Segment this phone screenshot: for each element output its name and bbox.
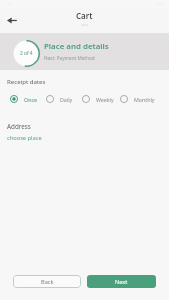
button[interactable]: choose place: [7, 134, 42, 142]
button[interactable]: Next: [87, 275, 156, 288]
staticText: choose place: [7, 134, 42, 142]
staticText: Address: [7, 122, 31, 131]
staticText: Receipt dates: [7, 77, 46, 85]
staticText: 2 of 4: [20, 50, 33, 57]
staticText: Back: [41, 278, 54, 286]
button[interactable]: Daily: [43, 92, 79, 106]
staticText: step: [81, 22, 89, 27]
staticText: Monthly: [134, 96, 155, 103]
staticText: Daily: [60, 96, 73, 103]
button[interactable]: Monthly: [117, 92, 155, 106]
staticText: Cart: [76, 10, 93, 21]
staticText: Weekly: [96, 96, 114, 103]
button[interactable]: Weekly: [79, 92, 117, 106]
button[interactable]: Back: [3, 11, 21, 29]
staticText: Once: [24, 96, 37, 103]
staticText: Next: Payment Method: [44, 55, 95, 61]
staticText: Place and details: [44, 41, 109, 52]
staticText: Next: [115, 278, 128, 286]
button[interactable]: Once: [7, 92, 43, 106]
button[interactable]: Back: [13, 275, 81, 288]
